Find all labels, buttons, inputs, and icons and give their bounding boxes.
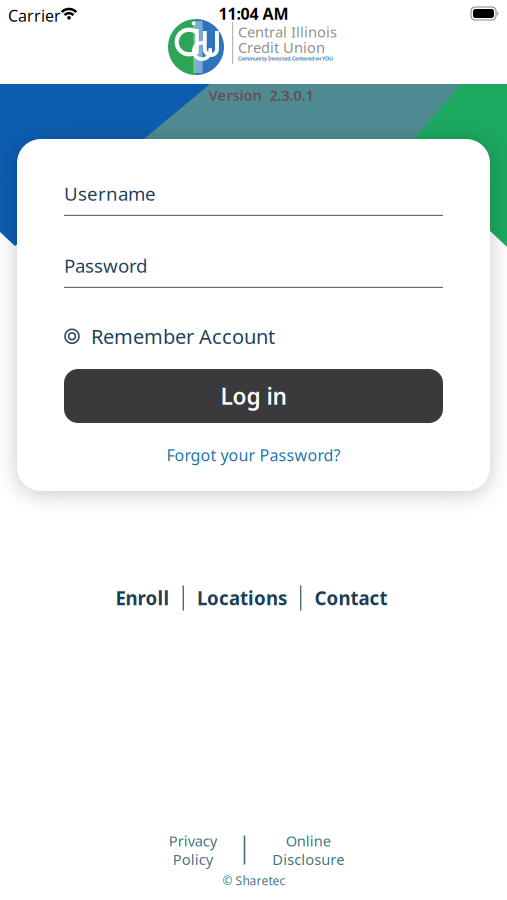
staticText: Central Illinois bbox=[238, 22, 337, 41]
button[interactable]: Enroll bbox=[116, 586, 170, 610]
staticText: Carrier bbox=[8, 5, 61, 26]
staticText: Forgot your Password? bbox=[166, 444, 340, 466]
staticText: © Sharetec bbox=[222, 872, 285, 888]
button[interactable]: Locations bbox=[197, 586, 287, 610]
staticText: Disclosure bbox=[272, 849, 344, 869]
staticText: Remember Account bbox=[91, 323, 275, 350]
button[interactable]: Password bbox=[64, 253, 443, 288]
staticText: Credit Union bbox=[238, 37, 325, 57]
staticText: Version 2.3.0.1 bbox=[208, 85, 313, 105]
staticText: Online bbox=[286, 831, 331, 850]
staticText: Log in bbox=[220, 381, 286, 411]
button[interactable]: Contact bbox=[314, 586, 387, 610]
button[interactable]: Username bbox=[64, 181, 443, 216]
staticText: Contact bbox=[314, 586, 387, 610]
button[interactable]: Forgot your Password? bbox=[166, 444, 340, 466]
staticText: Policy bbox=[173, 849, 213, 869]
button[interactable]: Online bbox=[272, 831, 344, 869]
button[interactable]: Privacy bbox=[169, 831, 217, 869]
staticText: Enroll bbox=[116, 586, 170, 610]
staticText: Username bbox=[64, 181, 156, 206]
button[interactable]: Remember Account bbox=[64, 323, 275, 350]
button[interactable]: Log in bbox=[64, 369, 443, 423]
staticText: Password bbox=[64, 253, 147, 278]
staticText: Privacy bbox=[169, 831, 217, 850]
staticText: Community Invested, Centered on YOU bbox=[238, 55, 333, 62]
staticText: 11:04 AM bbox=[218, 3, 288, 24]
staticText: Locations bbox=[197, 586, 287, 610]
